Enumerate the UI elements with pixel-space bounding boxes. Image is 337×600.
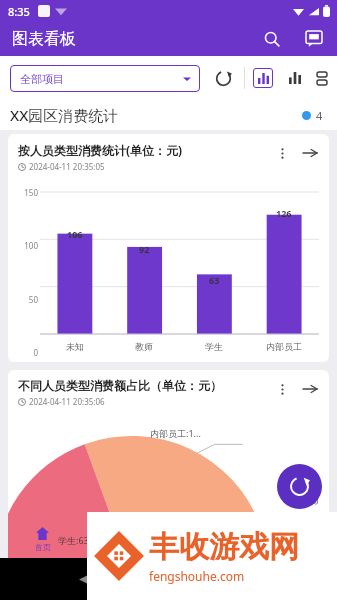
- button[interactable]: 未知: [286, 474, 319, 485]
- button[interactable]: List view: [317, 68, 327, 88]
- button[interactable]: More options: [271, 378, 293, 400]
- staticText: 2024-04-11 20:35:06: [29, 396, 105, 407]
- button[interactable]: Tab: [85, 520, 169, 558]
- staticText: 0: [14, 347, 38, 358]
- staticText: 内部员工:1...: [150, 427, 201, 439]
- button[interactable]: 教师: [286, 495, 319, 506]
- staticText: 4: [316, 108, 323, 123]
- button[interactable]: More options: [271, 142, 293, 164]
- button[interactable]: 不同人员类型消费额占比（单位：元）: [8, 370, 329, 570]
- staticText: fengshouhe.com: [149, 568, 245, 584]
- staticText: 未知: [66, 341, 84, 352]
- staticText: 92: [139, 243, 150, 255]
- button[interactable]: 首页: [0, 520, 85, 558]
- button[interactable]: Tab: [169, 520, 253, 558]
- staticText: 100: [14, 240, 38, 251]
- staticText: 106: [67, 228, 83, 240]
- staticText: 2024-04-11 20:35:05: [29, 161, 105, 172]
- staticText: 63: [209, 274, 220, 286]
- staticText: 150: [14, 187, 38, 198]
- staticText: XX园区消费统计: [10, 105, 119, 125]
- staticText: 学生: [205, 341, 223, 352]
- staticText: 丰收游戏网: [149, 528, 299, 566]
- button[interactable]: Refresh data: [277, 464, 322, 509]
- staticText: 8:35: [8, 4, 30, 19]
- staticText: 学生:63: [58, 534, 89, 546]
- button[interactable]: 4: [302, 108, 323, 123]
- button[interactable]: Chart view: [253, 68, 273, 88]
- button[interactable]: Open detail: [299, 142, 321, 164]
- button[interactable]: 全部项目: [10, 65, 200, 92]
- button[interactable]: 按人员类型消费统计(单位：元): [8, 134, 329, 362]
- staticText: 全部项目: [20, 72, 64, 86]
- staticText: 不同人员类型消费额占比（单位：元）: [18, 378, 222, 393]
- staticText: 教师: [135, 341, 153, 352]
- staticText: 126: [276, 207, 292, 219]
- button[interactable]: Bar view: [285, 68, 305, 88]
- button[interactable]: Refresh: [210, 65, 236, 91]
- staticText: 内部员工: [266, 341, 302, 352]
- staticText: 未知: [301, 474, 319, 485]
- button[interactable]: Tab: [253, 520, 337, 558]
- staticText: 首页: [35, 542, 51, 552]
- staticText: 教师: [301, 495, 319, 506]
- button[interactable]: Open detail: [299, 378, 321, 400]
- staticText: 按人员类型消费统计(单位：元): [18, 142, 183, 158]
- button[interactable]: Search: [259, 26, 285, 52]
- staticText: 图表看板: [12, 29, 76, 49]
- button[interactable]: Messages: [301, 26, 327, 52]
- staticText: 50: [14, 294, 38, 305]
